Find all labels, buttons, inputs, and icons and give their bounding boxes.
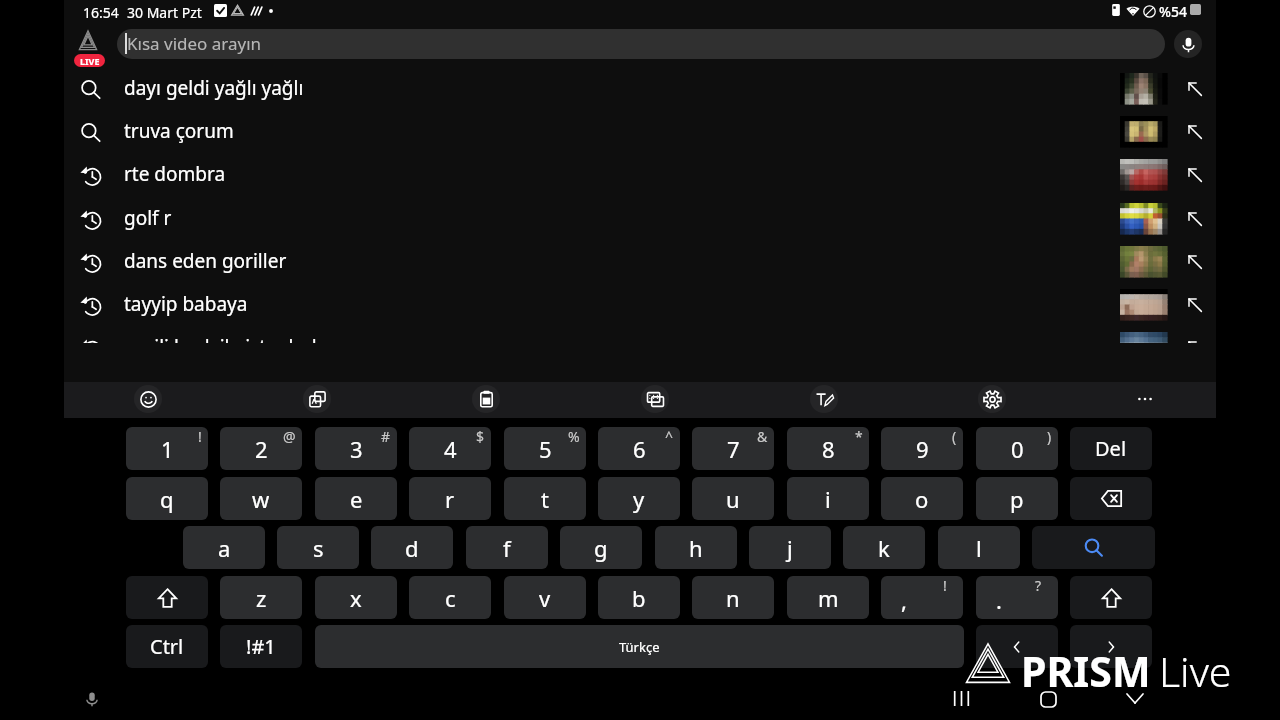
button[interactable]: l bbox=[938, 526, 1020, 569]
button[interactable]: 1 bbox=[126, 427, 208, 470]
button[interactable]: rte dombra bbox=[64, 153, 1216, 196]
button[interactable]: p bbox=[976, 477, 1058, 520]
button[interactable]: i bbox=[787, 477, 869, 520]
button[interactable]: 0 bbox=[976, 427, 1058, 470]
button[interactable] bbox=[1032, 526, 1155, 569]
staticText: Türkçe bbox=[619, 638, 660, 656]
button[interactable]: 6 bbox=[598, 427, 680, 470]
staticText: PRISM bbox=[1021, 643, 1151, 699]
button[interactable] bbox=[1070, 477, 1152, 520]
button[interactable]: Voice search bbox=[1174, 30, 1202, 58]
button[interactable] bbox=[976, 625, 1058, 668]
button[interactable]: b bbox=[598, 576, 680, 619]
button[interactable]: truva çorum bbox=[64, 110, 1216, 153]
button[interactable]: 2 bbox=[220, 427, 302, 470]
button[interactable]: Back bbox=[1111, 685, 1159, 720]
button[interactable]: More options bbox=[1131, 385, 1159, 413]
staticText: ! bbox=[943, 576, 947, 595]
staticText: i bbox=[825, 484, 831, 514]
staticText: k bbox=[878, 533, 890, 563]
staticText: 16:54 bbox=[83, 3, 119, 22]
button[interactable]: z bbox=[220, 576, 302, 619]
staticText: l bbox=[976, 533, 982, 563]
button[interactable]: u bbox=[692, 477, 774, 520]
button[interactable]: Türkçe bbox=[315, 625, 964, 668]
staticText: w bbox=[252, 484, 270, 514]
staticText: e bbox=[350, 484, 363, 514]
button[interactable]: j bbox=[749, 526, 831, 569]
button[interactable]: Kısa video arayın bbox=[117, 29, 1165, 59]
button[interactable]: h bbox=[655, 526, 737, 569]
staticText: v bbox=[539, 583, 551, 613]
staticText: j bbox=[787, 533, 793, 563]
staticText: !#1 bbox=[246, 633, 276, 660]
button[interactable]: !#1 bbox=[220, 625, 302, 668]
button[interactable]: t bbox=[504, 477, 586, 520]
staticText: x bbox=[350, 583, 362, 613]
staticText: s bbox=[313, 533, 324, 563]
button[interactable]: x bbox=[315, 576, 397, 619]
staticText: r bbox=[445, 484, 455, 514]
button[interactable]: 9 bbox=[881, 427, 963, 470]
button[interactable]: tayyip babaya bbox=[64, 283, 1216, 326]
button[interactable]: Recents bbox=[936, 685, 984, 720]
button[interactable]: Settings bbox=[978, 385, 1006, 413]
staticText: 4 bbox=[444, 434, 457, 464]
button[interactable]: Clipboard bbox=[472, 385, 500, 413]
button[interactable]: Stickers bbox=[303, 385, 331, 413]
button[interactable]: 8 bbox=[787, 427, 869, 470]
button[interactable]: y bbox=[598, 477, 680, 520]
button[interactable]: r bbox=[409, 477, 491, 520]
button[interactable]: Keyboard modes bbox=[641, 385, 669, 413]
button[interactable]: m bbox=[787, 576, 869, 619]
staticText: 6 bbox=[633, 434, 646, 464]
button[interactable]: k bbox=[843, 526, 925, 569]
button[interactable]: g bbox=[560, 526, 642, 569]
button[interactable]: w bbox=[220, 477, 302, 520]
button[interactable]: v bbox=[504, 576, 586, 619]
button[interactable]: Del bbox=[1070, 427, 1152, 470]
button[interactable]: f bbox=[466, 526, 548, 569]
staticText: rte dombra bbox=[124, 161, 226, 187]
staticText: Kısa video arayın bbox=[127, 32, 262, 55]
button[interactable]: . bbox=[976, 576, 1058, 619]
button[interactable]: a bbox=[183, 526, 265, 569]
staticText: 30 Mart Pzt bbox=[127, 3, 202, 22]
button[interactable]: 5 bbox=[504, 427, 586, 470]
staticText: m bbox=[818, 583, 839, 613]
button[interactable]: s bbox=[277, 526, 359, 569]
button[interactable]: q bbox=[126, 477, 208, 520]
button[interactable]: 7 bbox=[692, 427, 774, 470]
button[interactable]: , bbox=[881, 576, 963, 619]
button[interactable]: 4 bbox=[409, 427, 491, 470]
button[interactable]: Emoji bbox=[134, 385, 162, 413]
staticText: 5 bbox=[539, 434, 552, 464]
staticText: ( bbox=[952, 427, 957, 446]
staticText: h bbox=[689, 533, 703, 563]
button[interactable]: c bbox=[409, 576, 491, 619]
button[interactable]: Voice input bbox=[80, 687, 104, 711]
button[interactable]: n bbox=[692, 576, 774, 619]
button[interactable]: Handwriting bbox=[810, 385, 838, 413]
staticText: 7 bbox=[727, 434, 740, 464]
button[interactable]: dans eden goriller bbox=[64, 240, 1216, 283]
button[interactable]: golf r bbox=[64, 197, 1216, 240]
staticText: tayyip babaya bbox=[124, 291, 248, 317]
staticText: ) bbox=[1047, 427, 1052, 446]
staticText: 8 bbox=[822, 434, 835, 464]
staticText: ! bbox=[198, 427, 202, 446]
button[interactable]: o bbox=[881, 477, 963, 520]
button[interactable]: dayı geldi yağlı yağlı bbox=[64, 67, 1216, 110]
button[interactable]: perili kosk ile istanbul bbox=[64, 326, 1216, 343]
button[interactable]: d bbox=[371, 526, 453, 569]
staticText: n bbox=[726, 583, 740, 613]
button[interactable]: Ctrl bbox=[126, 625, 208, 668]
button[interactable]: 3 bbox=[315, 427, 397, 470]
button[interactable]: Home bbox=[1024, 685, 1072, 720]
button[interactable] bbox=[1070, 576, 1152, 619]
button[interactable] bbox=[126, 576, 208, 619]
button[interactable] bbox=[1070, 625, 1152, 668]
button[interactable]: e bbox=[315, 477, 397, 520]
staticText: p bbox=[1010, 484, 1024, 514]
button[interactable]: Account bbox=[70, 24, 106, 60]
